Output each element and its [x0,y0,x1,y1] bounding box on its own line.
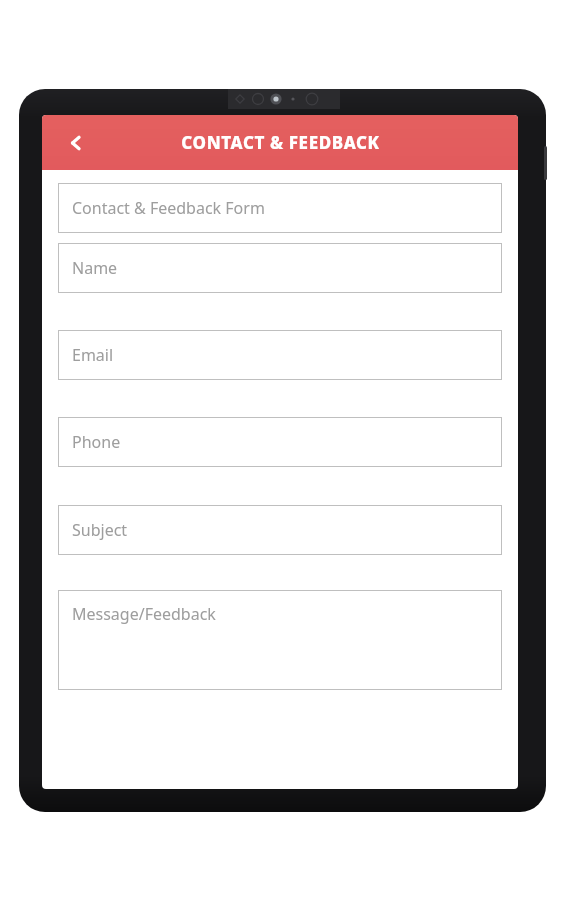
staticText: Email [72,344,114,366]
button[interactable]: Contact & Feedback Form [58,183,502,233]
staticText: CONTACT & FEEDBACK [181,131,380,154]
staticText: Name [72,257,118,279]
button[interactable]: Back [54,121,98,165]
staticText: Contact & Feedback Form [72,197,265,219]
button[interactable]: Name [58,243,502,293]
staticText: Subject [72,519,128,541]
staticText: Phone [72,431,121,453]
button[interactable]: Message/Feedback [58,590,502,690]
staticText: Message/Feedback [72,603,216,625]
button[interactable]: Phone [58,417,502,467]
button[interactable]: Email [58,330,502,380]
button[interactable]: Subject [58,505,502,555]
